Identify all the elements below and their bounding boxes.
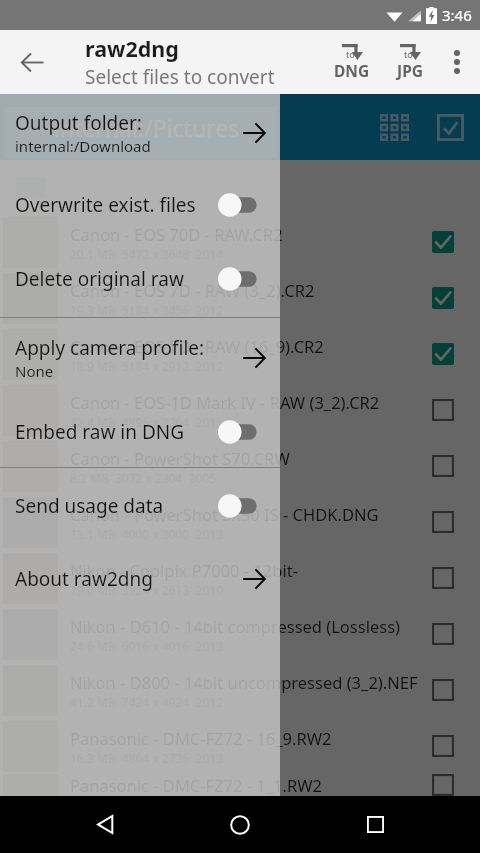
staticText: Canon - EOS 7D - RAW (16_9).CR2 xyxy=(70,335,324,357)
button[interactable]: Panasonic - DMC-FZ72 - 1_1.RW2 xyxy=(0,774,480,796)
button[interactable]: Nikon - D800 - 14bit uncompressed (3_2).… xyxy=(0,662,480,718)
staticText: Embed raw in DNG xyxy=(15,419,218,445)
button[interactable] xyxy=(5,107,277,158)
button[interactable]: Panasonic - DMC-FZ72 - 16_9.RW2 xyxy=(0,718,480,774)
staticText: Canon - EOS 7D - RAW (3_2).CR2 xyxy=(70,279,315,301)
staticText: Delete original raw xyxy=(15,266,218,292)
staticText: Panasonic - DMC-FZ72 - 1_1.RW2 xyxy=(70,774,323,796)
button[interactable]: Recent apps xyxy=(345,796,405,853)
staticText: internal:/Download xyxy=(15,136,151,156)
staticText: Select files to convert xyxy=(85,64,275,90)
staticText: raw2dng xyxy=(85,34,179,63)
staticText: to xyxy=(404,48,413,60)
staticText: About raw2dng xyxy=(15,566,242,592)
staticText: DNG xyxy=(334,60,370,81)
button[interactable]: Back xyxy=(8,38,56,86)
button[interactable]: Output folder: xyxy=(0,106,280,159)
button[interactable]: More options xyxy=(439,36,475,88)
staticText: Overwrite exist. files xyxy=(15,192,218,218)
staticText: JPG xyxy=(397,60,423,81)
button[interactable]: Convert to DNG xyxy=(323,34,381,90)
button[interactable]: Apply camera profile: xyxy=(0,331,280,384)
staticText: Send usage data xyxy=(15,493,218,519)
staticText: 19.0 MB 3924 x 2613 2010 xyxy=(70,582,224,598)
button[interactable]: Send usage data xyxy=(0,482,280,530)
staticText: Apply camera profile: xyxy=(15,335,205,361)
staticText: Canon - EOS 70D - RAW.CR2 xyxy=(70,223,283,245)
staticText: Nikon - D610 - 14bit compressed (Lossles… xyxy=(70,615,424,637)
staticText: 19.3 MB 5184 x 3456 2012 xyxy=(70,302,224,318)
staticText: Output folder: xyxy=(15,110,142,136)
button[interactable]: Nikon - Coolpix P7000 - 12bit-uncompress… xyxy=(0,550,480,606)
button[interactable]: Convert to JPG xyxy=(381,34,439,90)
staticText: Panasonic - DMC-FZ72 - 16_9.RW2 xyxy=(70,727,332,749)
staticText: Nikon - D800 - 14bit uncompressed (3_2).… xyxy=(70,671,418,693)
staticText: Canon - EOS-1D Mark IV - RAW (3_2).CR2 xyxy=(70,391,380,413)
button[interactable]: Back xyxy=(75,796,135,853)
staticText: 3:46 xyxy=(442,5,472,25)
staticText: Canon - PowerShot SX50 IS - CHDK.DNG xyxy=(70,503,379,525)
button[interactable]: Select all xyxy=(422,99,478,155)
button[interactable]: Canon - EOS-1D Mark IV - RAW (3_2).CR2 xyxy=(0,382,480,438)
button[interactable]: Embed raw in DNG xyxy=(0,408,280,456)
staticText: 18.9 MB 5184 x 2912 2012 xyxy=(70,358,224,374)
staticText: Nikon - Coolpix P7000 - 12bit-uncompress… xyxy=(70,559,424,581)
staticText: Canon - PowerShot S70.CRW xyxy=(70,447,290,469)
button[interactable]: Overwrite exist. files xyxy=(0,181,280,229)
staticText: 22.4 MB 4896 x 3264 2011 xyxy=(70,414,224,430)
button[interactable]: Canon - PowerShot SX50 IS - CHDK.DNG xyxy=(0,494,480,550)
staticText: internal:/Pictures xyxy=(54,112,240,143)
button[interactable]: Grid view xyxy=(366,99,422,155)
button[interactable] xyxy=(0,160,480,214)
button[interactable]: Canon - EOS 70D - RAW.CR2 xyxy=(0,214,480,270)
staticText: None xyxy=(15,361,54,381)
button[interactable]: Home xyxy=(210,796,270,853)
button[interactable]: Canon - PowerShot S70.CRW xyxy=(0,438,480,494)
staticText: to xyxy=(346,48,355,60)
button[interactable]: Canon - EOS 7D - RAW (3_2).CR2 xyxy=(0,270,480,326)
button[interactable]: Canon - EOS 7D - RAW (16_9).CR2 xyxy=(0,326,480,382)
button[interactable]: Nikon - D610 - 14bit compressed (Lossles… xyxy=(0,606,480,662)
button[interactable]: Delete original raw xyxy=(0,255,280,303)
button[interactable]: About raw2dng xyxy=(0,555,280,603)
